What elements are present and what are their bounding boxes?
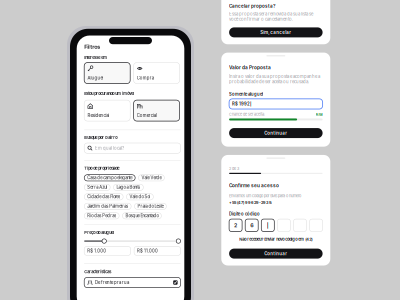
staticText: +55 (47) 99629-2939.: [229, 200, 272, 205]
button[interactable]: Casa de campo elegante: [84, 175, 135, 181]
staticText: Busque por bairro: [84, 135, 117, 140]
staticText: R$ 11.000: [137, 248, 158, 253]
staticText: |: [267, 222, 269, 229]
button[interactable]: Vale do Sol: [126, 194, 153, 200]
staticText: R$ 1.000: [87, 248, 106, 253]
staticText: Comercial: [137, 113, 157, 118]
staticText: Interesse em: [84, 55, 107, 60]
button[interactable]: Continuar: [229, 128, 323, 138]
button[interactable]: Rio das Pedras: [84, 213, 119, 219]
button[interactable]: De frente pra rua: [84, 277, 181, 288]
button[interactable]: Praia do Leste: [134, 203, 166, 209]
button[interactable]: Cidade das Flores: [84, 194, 123, 200]
staticText: Rio das Pedras: [87, 213, 116, 218]
staticText: Alta: [316, 112, 323, 116]
staticText: Cidade das Flores: [87, 194, 120, 199]
staticText: Aluguel: [87, 75, 103, 81]
staticText: Cancelar proposta?: [229, 3, 276, 9]
staticText: R$ 1992|: [232, 101, 252, 107]
staticText: 6: [250, 222, 253, 229]
staticText: Jardim das Palmeiras: [87, 204, 128, 209]
staticText: Enviamos um código por SMS para o número: [229, 193, 301, 198]
staticText: Não recebeu? Enviar novo código em (42): [239, 237, 312, 242]
button[interactable]: Jardim das Palmeiras: [84, 203, 131, 209]
button[interactable]: Lagoa Bonita: [113, 184, 143, 190]
button[interactable]: Comercial: [134, 100, 180, 121]
button[interactable]: Aluguel: [84, 63, 130, 84]
staticText: Casa de campo elegante: [87, 175, 132, 180]
staticText: Características: [84, 269, 111, 274]
staticText: Insira o valor da sua proposta e acompan…: [229, 74, 320, 84]
staticText: Vale Verde: [141, 175, 161, 180]
staticText: Compra: [137, 75, 154, 81]
staticText: Essa proposta será removida da sua lista…: [229, 11, 313, 22]
staticText: Somente aluguel: [229, 92, 263, 97]
button[interactable]: Sim, cancelar: [229, 27, 323, 37]
staticText: Filtros: [84, 43, 100, 50]
staticText: Serra Azul: [87, 185, 107, 190]
staticText: Residencial: [87, 113, 109, 118]
staticText: Continuar: [264, 130, 287, 136]
button[interactable]: Serra Azul: [84, 184, 110, 190]
button[interactable]: Não recebeu? Enviar novo código em (42): [229, 237, 323, 242]
staticText: De frente pra rua: [95, 280, 129, 285]
button[interactable]: Em qual local?: [84, 143, 181, 153]
staticText: Valor da Proposta: [229, 65, 271, 70]
staticText: 2: [234, 222, 237, 229]
staticText: Bosque Encantado: [125, 213, 158, 218]
button[interactable]: Vale Verde: [138, 175, 164, 181]
button[interactable]: Residencial: [84, 100, 130, 121]
staticText: Vale do Sol: [129, 194, 150, 199]
staticText: 2 de 3: [229, 166, 239, 171]
staticText: Lagoa Bonita: [116, 185, 140, 190]
staticText: Chance de ser aceita:: [229, 112, 265, 116]
button[interactable]: Bosque Encantado: [122, 213, 161, 219]
staticText: Digite o código: [229, 211, 260, 216]
staticText: Confirme seu acesso: [229, 183, 279, 188]
staticText: Tipo de propriedade: [84, 166, 119, 171]
staticText: Estou procurando um imóvel: [84, 91, 134, 96]
staticText: Continuar: [264, 251, 287, 256]
staticText: Em qual local?: [95, 146, 124, 151]
staticText: Sim, cancelar: [260, 30, 291, 35]
button[interactable]: Continuar: [229, 249, 323, 259]
staticText: Preço do aluguel: [84, 230, 114, 235]
button[interactable]: Compra: [134, 63, 180, 84]
staticText: Praia do Leste: [137, 204, 163, 209]
